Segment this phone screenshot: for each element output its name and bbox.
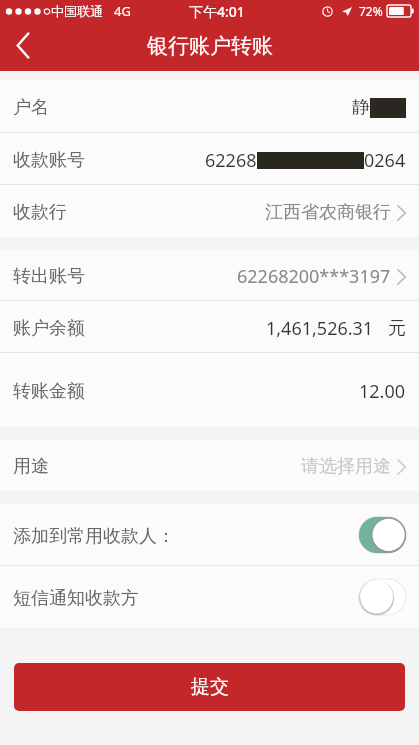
staticText: 元 [388,317,406,340]
button[interactable]: 用途 [0,440,419,491]
staticText: 江西省农商银行 [265,201,391,224]
button[interactable]: 账户余额 [0,301,419,353]
button[interactable]: Switch off [359,579,406,615]
staticText: 72% [359,3,383,19]
staticText: 账户余额 [13,317,85,340]
button[interactable]: 添加到常用收款人： [0,504,419,566]
button[interactable]: Switch on [359,517,406,553]
staticText: 0264 [364,148,406,173]
button[interactable]: Back [0,22,46,71]
staticText: 提交 [191,675,229,699]
staticText: 转账金额 [13,380,85,403]
staticText: 转出账号 [13,265,85,288]
staticText: 62268200***3197 [237,264,391,289]
staticText: 用途 [13,455,49,478]
staticText: 收款账号 [13,149,85,172]
staticText: 收款行 [13,201,67,224]
button[interactable]: 短信通知收款方 [0,566,419,628]
staticText: 4G [114,2,131,20]
button[interactable]: 提交 [14,663,405,711]
staticText: 62268 [205,148,257,173]
button[interactable]: 户名 [0,80,419,133]
button[interactable]: 转账金额 [0,353,419,427]
staticText: 12.00 [359,379,406,404]
staticText: 银行账户转账 [147,33,273,59]
staticText: 1,461,526.31 [266,316,374,341]
button[interactable]: 收款行 [0,185,419,237]
button[interactable]: 收款账号 [0,133,419,185]
staticText: 静 [352,96,370,119]
staticText: 请选择用途 [301,455,391,478]
staticText: 短信通知收款方 [13,587,139,610]
staticText: 添加到常用收款人： [13,525,175,548]
staticText: 中国联通 [51,3,103,19]
staticText: 下午4:01 [189,2,245,21]
button[interactable]: 转出账号 [0,250,419,301]
staticText: 户名 [13,96,49,119]
